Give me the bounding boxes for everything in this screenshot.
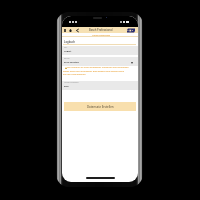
staticText: Erne Musten [64, 60, 80, 63]
button[interactable]: Back [75, 27, 80, 33]
staticText: Bosch Professional [89, 28, 113, 32]
staticText: Bad [64, 84, 69, 87]
button[interactable]: Logbuch [64, 40, 76, 44]
staticText: Neuer Datensatz [92, 34, 111, 37]
button[interactable]: Datensatz Erstellen [64, 102, 136, 111]
button[interactable]: Ort [62, 46, 138, 55]
staticText: aus der Liste waehlen. [63, 73, 86, 76]
staticText: Neuer Standort [64, 81, 79, 84]
button[interactable]: Bosch logo [127, 28, 135, 33]
button[interactable]: Firma [62, 57, 138, 66]
staticText: Logbuch [64, 40, 76, 44]
staticText: Datensatz Erstellen [87, 105, 114, 109]
staticText: weder aktiv noch eintragbar. Bitte Bedar… [63, 70, 124, 73]
staticText: Firma [64, 57, 70, 60]
staticText: Logist [64, 49, 72, 52]
button[interactable]: Menu [62, 27, 67, 33]
button[interactable]: Home [67, 27, 73, 33]
staticText: Der Standort ist nicht verfuegbar. Stand… [67, 66, 129, 69]
button[interactable]: Neuer Standort [62, 81, 138, 90]
staticText: Ort [64, 46, 68, 49]
